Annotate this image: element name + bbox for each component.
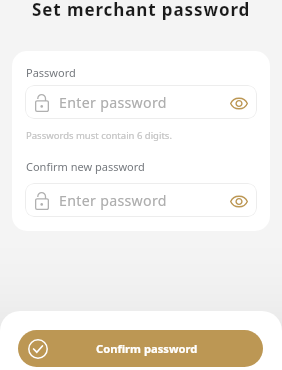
staticText: Enter password (59, 191, 167, 210)
staticText: Confirm password (96, 341, 198, 356)
staticText: Set merchant password (32, 0, 251, 21)
button[interactable]: Confirm password (18, 330, 263, 367)
button[interactable]: Enter password (25, 183, 257, 217)
staticText: Password (26, 65, 76, 80)
button[interactable]: Enter password (25, 85, 257, 119)
button[interactable]: Show password (226, 187, 252, 213)
staticText: Enter password (59, 93, 167, 112)
staticText: Confirm new password (26, 159, 145, 174)
staticText: Passwords must contain 6 digits. (26, 129, 172, 142)
button[interactable]: Show password (226, 89, 252, 115)
